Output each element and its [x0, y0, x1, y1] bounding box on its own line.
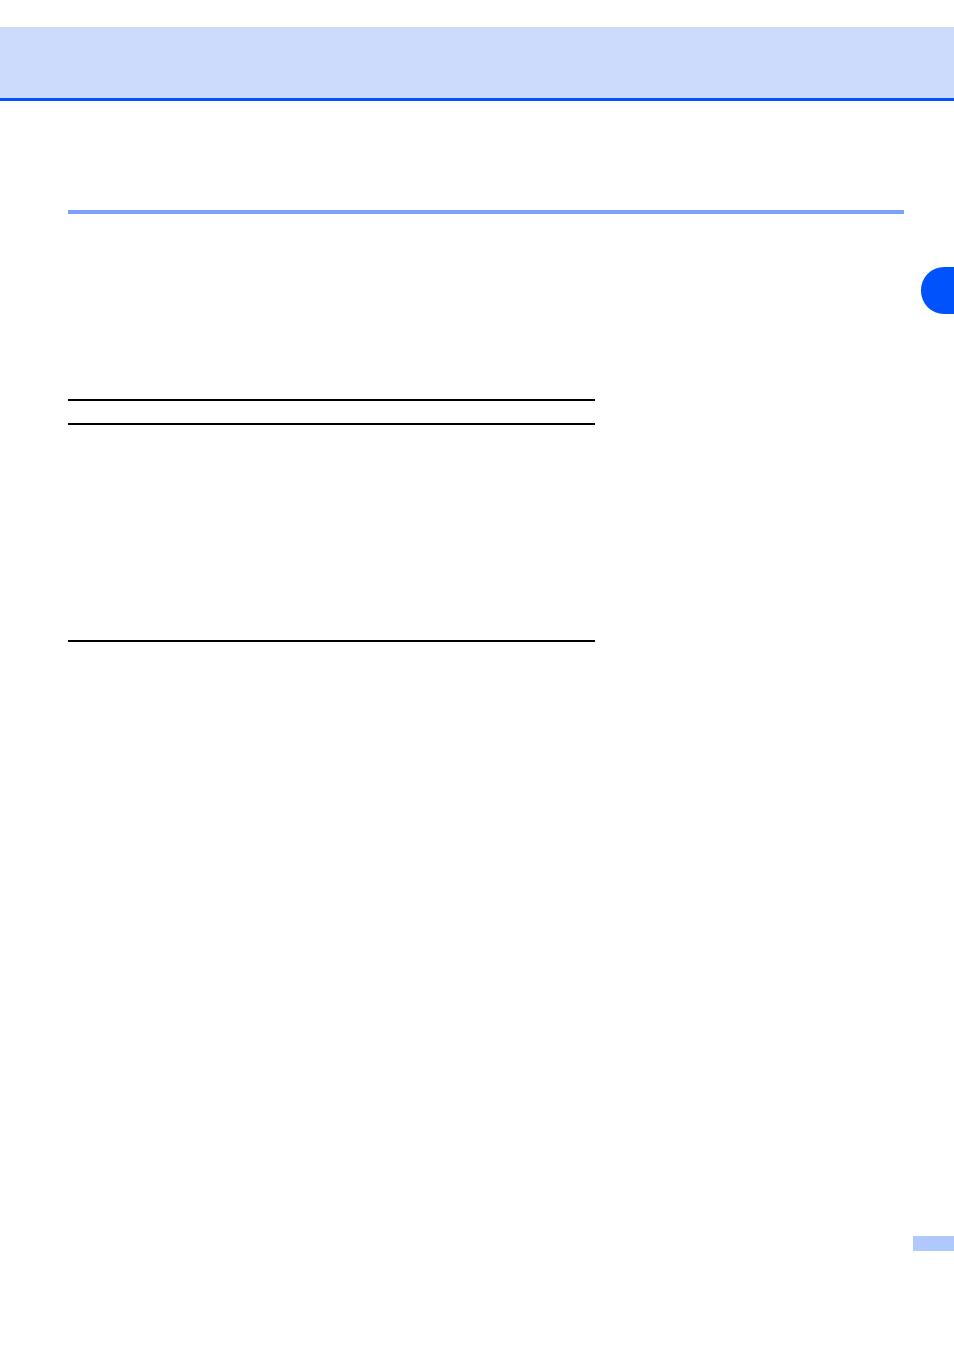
- button[interactable]: Chapter marker: [921, 267, 954, 314]
